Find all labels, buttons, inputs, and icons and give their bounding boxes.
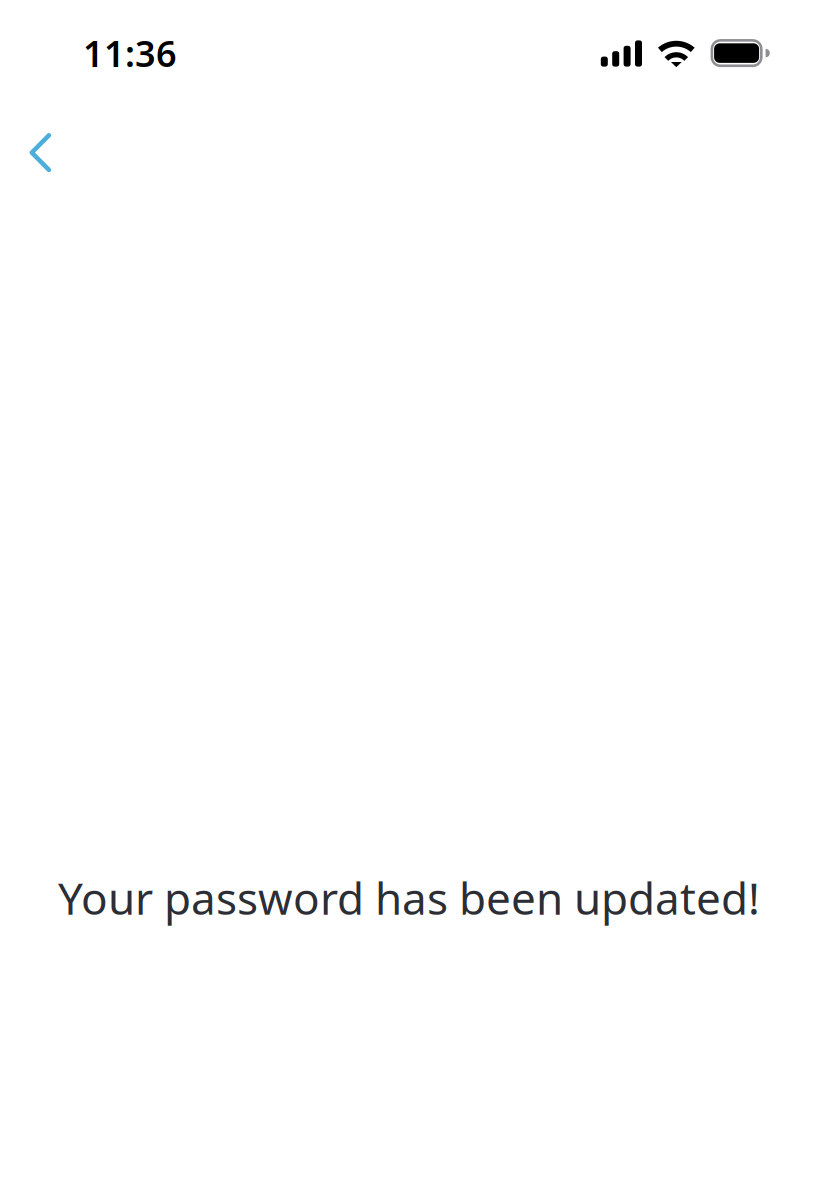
staticText: Your password has been updated! [58, 869, 760, 927]
button[interactable]: Back [0, 77, 91, 198]
staticText: 11:36 [83, 29, 177, 77]
